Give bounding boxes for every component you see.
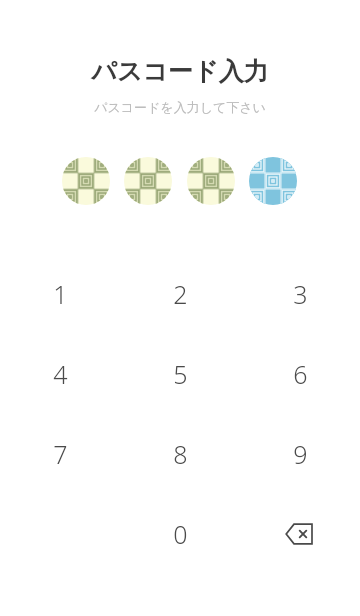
button[interactable]: 4 [0,334,120,414]
staticText: 4 [53,357,68,391]
staticText: 0 [173,517,188,551]
staticText: 5 [173,357,188,391]
button[interactable]: 3 [240,254,360,334]
staticText: 3 [293,277,308,311]
staticText: 7 [53,437,68,471]
staticText: パスコード入力 [0,56,360,87]
button[interactable]: 8 [120,414,240,494]
button[interactable]: 6 [240,334,360,414]
button[interactable]: 1 [0,254,120,334]
staticText: パスコードを入力して下さい [0,99,360,115]
button[interactable]: Backspace [240,494,360,574]
button[interactable]: 0 [120,494,240,574]
staticText: 2 [173,277,188,311]
staticText: 6 [293,357,308,391]
button[interactable]: 5 [120,334,240,414]
button[interactable]: 9 [240,414,360,494]
staticText: 9 [293,437,308,471]
button[interactable]: 7 [0,414,120,494]
staticText: 1 [53,277,68,311]
button[interactable]: 2 [120,254,240,334]
staticText: 8 [173,437,188,471]
